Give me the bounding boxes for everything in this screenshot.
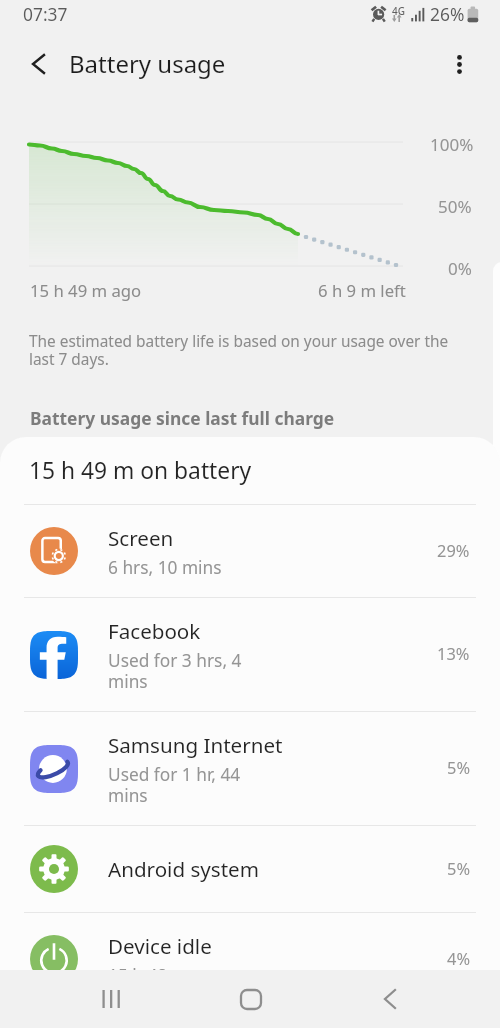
button[interactable]: Samsung Internet xyxy=(0,712,500,825)
staticText: Device idle xyxy=(108,932,212,960)
staticText: 15 h 49 m ago xyxy=(30,282,142,301)
button[interactable]: Device idle xyxy=(0,913,500,1005)
button[interactable]: Android system xyxy=(0,826,500,912)
staticText: Used for 1 hr, 44 mins xyxy=(108,764,241,806)
staticText: The estimated battery life is based on y… xyxy=(29,333,449,369)
staticText: 5% xyxy=(447,860,470,879)
staticText: 5% xyxy=(447,759,470,778)
staticText: 50% xyxy=(438,198,472,217)
staticText: Android system xyxy=(108,855,259,883)
staticText: Used for 3 hrs, 4 mins xyxy=(108,650,242,692)
button[interactable]: More options xyxy=(439,44,479,84)
staticText: 0% xyxy=(448,260,472,279)
button[interactable]: Recent apps xyxy=(80,970,139,1028)
staticText: 6 hrs, 10 mins xyxy=(108,557,222,578)
button[interactable]: Back xyxy=(360,970,419,1028)
button[interactable]: Screen xyxy=(0,505,500,597)
button[interactable]: Navigate up xyxy=(18,44,58,84)
staticText: 13% xyxy=(437,645,470,664)
staticText: 29% xyxy=(437,542,470,561)
staticText: Battery usage xyxy=(69,50,226,79)
staticText: Samsung Internet xyxy=(108,731,283,759)
staticText: Battery usage since last full charge xyxy=(30,409,335,430)
button[interactable]: Facebook xyxy=(0,598,500,711)
staticText: Facebook xyxy=(108,617,201,645)
staticText: 100% xyxy=(430,136,474,155)
staticText: Screen xyxy=(108,524,174,552)
staticText: 15 h 49 m on battery xyxy=(29,458,252,485)
staticText: 15 h 48 m xyxy=(108,965,188,986)
staticText: 07:37 xyxy=(23,6,68,25)
staticText: 4G xyxy=(392,4,405,18)
button[interactable]: Home xyxy=(221,970,280,1028)
staticText: 4% xyxy=(447,950,470,969)
staticText: 26% xyxy=(430,6,465,25)
staticText: 6 h 9 m left xyxy=(318,282,406,301)
